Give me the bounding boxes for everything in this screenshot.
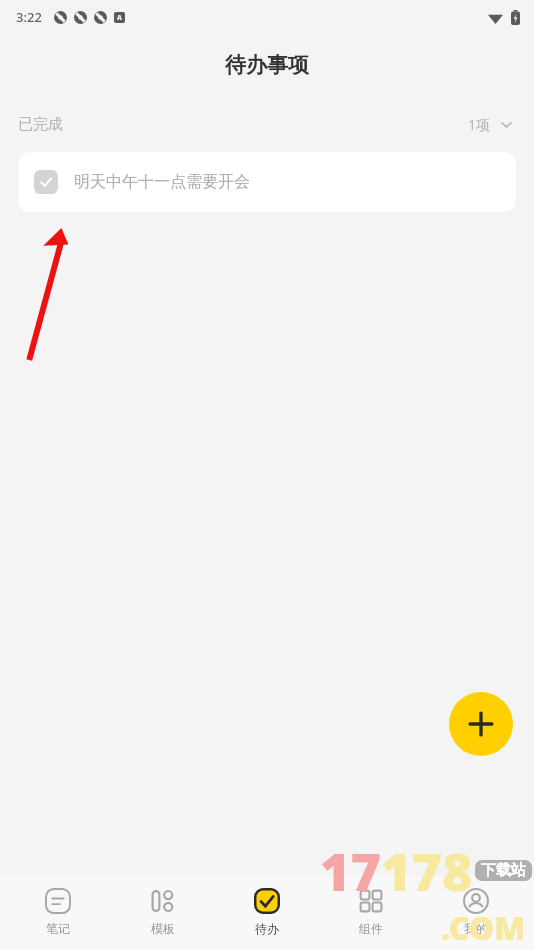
staticText: 待办 [255, 921, 279, 936]
staticText: 17 [320, 835, 381, 906]
staticText: 3:22 [16, 8, 42, 26]
button[interactable]: Completed checkbox [18, 152, 516, 212]
staticText: 笔记 [46, 921, 70, 936]
staticText: 已完成 [18, 115, 63, 134]
button[interactable]: Completed checkbox [34, 170, 58, 194]
staticText: A [117, 13, 122, 23]
staticText: 178 [381, 835, 473, 906]
button[interactable]: 待办 [221, 876, 313, 950]
staticText: 1项 [468, 115, 491, 134]
button[interactable]: 已完成 [0, 96, 534, 152]
staticText: .COM [441, 906, 526, 950]
staticText: 模板 [151, 921, 175, 936]
staticText: 下载站 [481, 861, 526, 880]
button[interactable]: 我的 [430, 876, 522, 950]
button[interactable]: 组件 [325, 876, 417, 950]
button[interactable]: 笔记 [12, 876, 104, 950]
button[interactable]: Add todo [449, 692, 513, 756]
staticText: 组件 [359, 921, 383, 936]
staticText: 我的 [464, 921, 488, 936]
button[interactable]: 模板 [117, 876, 209, 950]
staticText: 待办事项 [225, 52, 309, 78]
staticText: 明天中午十一点需要开会 [74, 172, 250, 192]
